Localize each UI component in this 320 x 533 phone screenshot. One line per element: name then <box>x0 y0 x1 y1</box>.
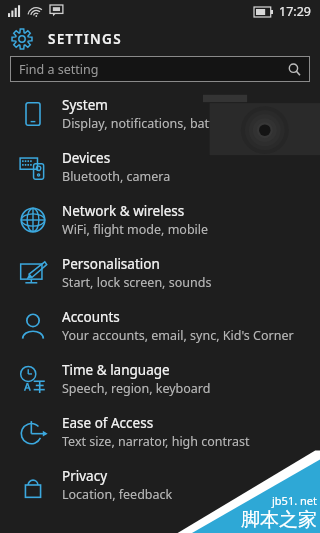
button[interactable]: Time & language <box>0 352 320 405</box>
staticText: Privacy <box>62 467 108 485</box>
staticText: Network & wireless <box>62 202 185 220</box>
staticText: Ease of Access <box>62 414 154 432</box>
staticText: Location, feedback <box>62 486 173 503</box>
button[interactable]: Personalisation <box>0 246 320 299</box>
staticText: Display, notifications, battery <box>62 115 233 132</box>
staticText: Devices <box>62 149 111 167</box>
staticText: 17:29 <box>279 3 311 20</box>
staticText: Time & language <box>62 361 170 379</box>
staticText: System <box>62 96 108 114</box>
staticText: Bluetooth, camera <box>62 168 171 185</box>
button[interactable]: System <box>0 87 320 140</box>
button[interactable]: Devices <box>0 140 320 193</box>
staticText: Text size, narrator, high contrast <box>62 433 250 450</box>
other: Search <box>288 63 301 76</box>
staticText: Speech, region, keyboard <box>62 380 211 397</box>
staticText: WiFi, flight mode, mobile <box>62 221 209 238</box>
button[interactable]: Ease of Access <box>0 405 320 458</box>
staticText: SETTINGS <box>48 30 122 48</box>
staticText: Start, lock screen, sounds <box>62 274 212 291</box>
staticText: Accounts <box>62 308 120 326</box>
button[interactable]: Network & wireless <box>0 193 320 246</box>
button[interactable]: Accounts <box>0 299 320 352</box>
button[interactable]: Privacy <box>0 458 320 511</box>
staticText: Personalisation <box>62 255 160 273</box>
button[interactable]: Find a setting <box>10 56 310 82</box>
staticText: 脚本之家 <box>241 508 317 532</box>
staticText: jb51. net <box>272 493 317 508</box>
staticText: Your accounts, email, sync, Kid's Corner <box>62 327 294 344</box>
staticText: Find a setting <box>19 61 99 78</box>
